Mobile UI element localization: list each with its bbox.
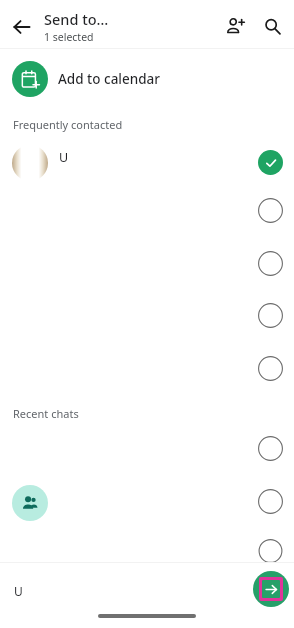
- staticText: Recent chats: [13, 406, 79, 421]
- button[interactable]: [0, 484, 294, 522]
- button[interactable]: U: [0, 140, 294, 186]
- button[interactable]: [0, 356, 294, 383]
- staticText: U: [59, 149, 69, 166]
- staticText: Frequently contacted: [13, 117, 123, 132]
- button[interactable]: Back: [6, 11, 38, 43]
- button[interactable]: [0, 436, 294, 463]
- button[interactable]: [0, 539, 294, 563]
- button[interactable]: Send: [253, 571, 289, 607]
- button[interactable]: [0, 198, 294, 225]
- button[interactable]: Selected: [258, 150, 283, 175]
- button[interactable]: [0, 303, 294, 330]
- staticText: Add to calendar: [58, 70, 161, 88]
- button[interactable]: Add person: [220, 11, 250, 41]
- button[interactable]: [0, 251, 294, 278]
- button[interactable]: Search: [257, 11, 287, 41]
- button[interactable]: Add to calendar: [0, 58, 294, 100]
- staticText: 1 selected: [44, 30, 94, 44]
- staticText: Send to…: [44, 9, 109, 29]
- staticText: U: [14, 583, 23, 599]
